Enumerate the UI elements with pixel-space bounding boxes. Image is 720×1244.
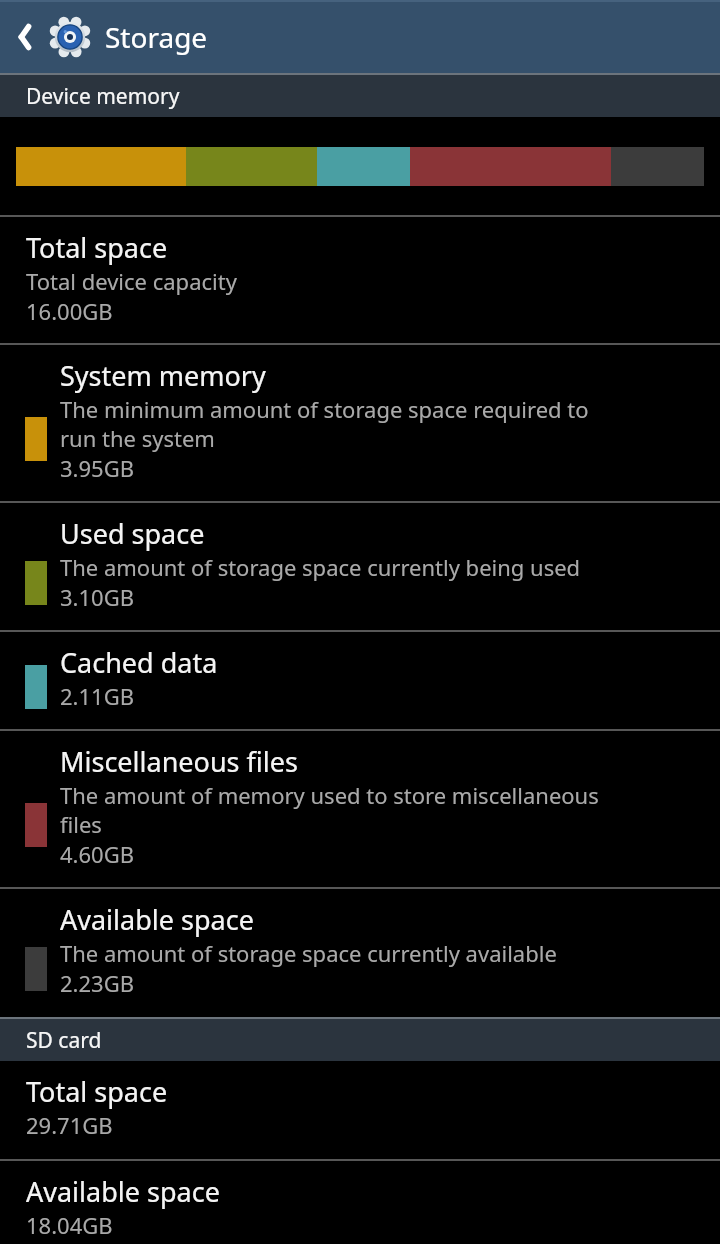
staticText: 4.60GB	[60, 839, 134, 869]
staticText: 18.04GB	[26, 1210, 113, 1240]
staticText: System memory	[60, 357, 266, 394]
button[interactable]: System memory	[0, 345, 720, 501]
staticText: Cached data	[60, 644, 218, 681]
staticText: The minimum amount of storage space requ…	[60, 394, 589, 453]
staticText: The amount of storage space currently be…	[60, 552, 581, 582]
staticText: Miscellaneous files	[60, 743, 298, 780]
staticText: Total space	[26, 229, 168, 266]
button[interactable]: Available space	[0, 1161, 720, 1244]
button[interactable]: Miscellaneous files	[0, 731, 720, 887]
button[interactable]: Available space	[0, 889, 720, 1017]
staticText: Available space	[26, 1173, 220, 1210]
staticText: 29.71GB	[26, 1110, 113, 1140]
staticText: Available space	[60, 901, 254, 938]
staticText: Total space	[26, 1073, 168, 1110]
staticText: Used space	[60, 515, 205, 552]
button[interactable]: Cached data	[0, 632, 720, 729]
button[interactable]: Navigate up	[0, 0, 720, 73]
staticText: Storage	[105, 18, 208, 56]
staticText: 3.10GB	[60, 582, 134, 612]
button[interactable]: Used space	[0, 503, 720, 630]
staticText: 2.23GB	[60, 968, 134, 998]
staticText: 16.00GB	[26, 296, 113, 326]
staticText: SD card	[26, 1026, 102, 1055]
staticText: Total device capacity	[26, 266, 237, 296]
button[interactable]: Total space	[0, 1061, 720, 1159]
staticText: Device memory	[26, 82, 180, 111]
staticText: 2.11GB	[60, 681, 134, 711]
staticText: 3.95GB	[60, 453, 134, 483]
staticText: The amount of storage space currently av…	[60, 938, 557, 968]
staticText: The amount of memory used to store misce…	[60, 780, 599, 839]
button[interactable]: Total space	[0, 217, 720, 343]
